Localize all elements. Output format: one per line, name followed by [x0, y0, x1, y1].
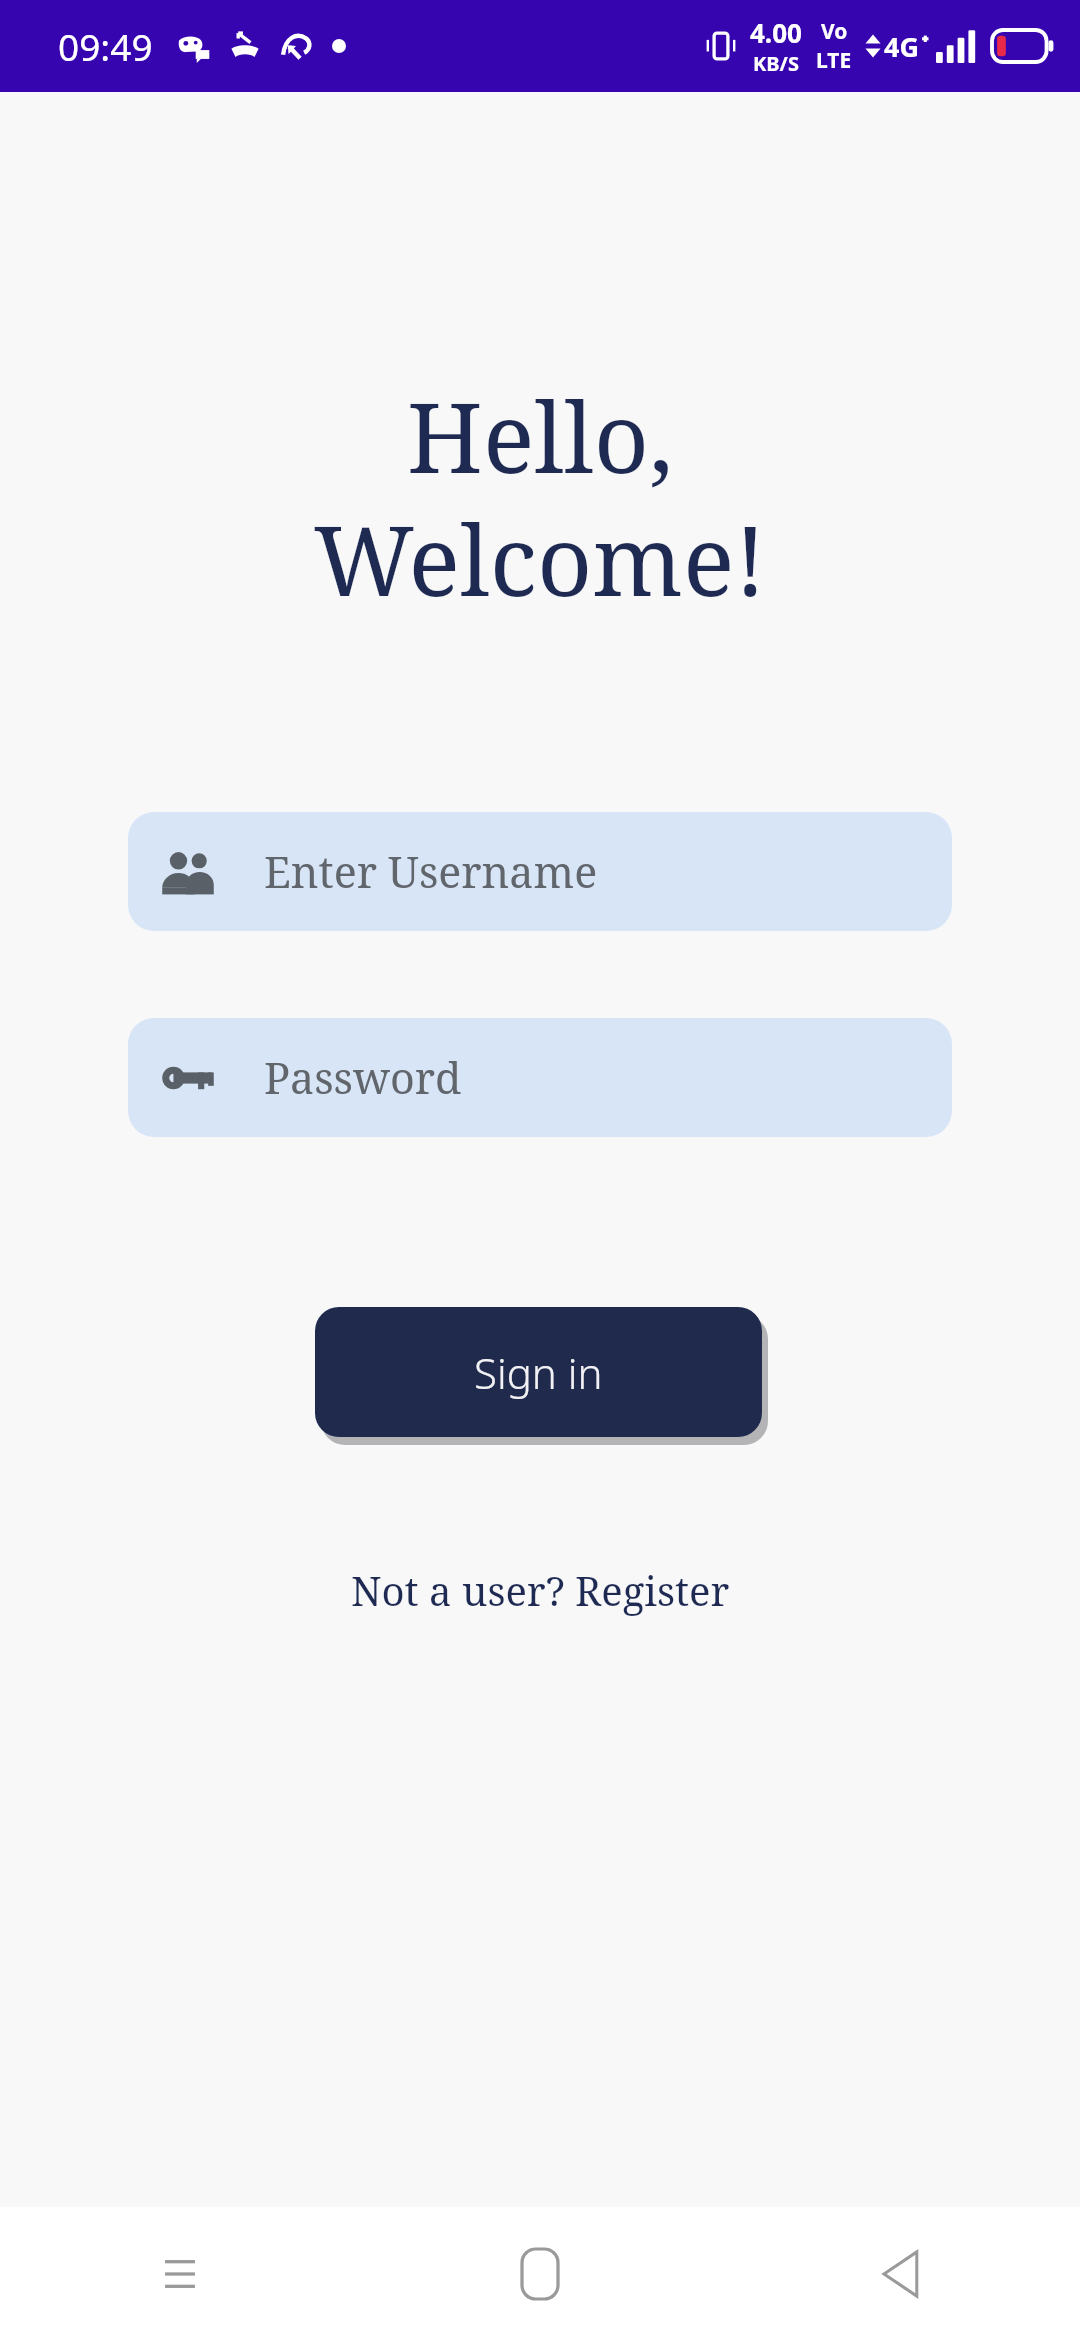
staticText: 4.00 [750, 15, 802, 50]
staticText: Password [264, 1048, 462, 1107]
staticText: Hello, Welcome! [0, 370, 1080, 624]
staticText: 09:49 [58, 21, 153, 71]
other: Password [160, 1050, 216, 1106]
staticText: KB/S [753, 50, 799, 77]
staticText: Vo [821, 17, 848, 46]
staticText: Enter Username [264, 842, 598, 901]
button[interactable]: Password [128, 1018, 952, 1137]
button[interactable]: Sign in [315, 1307, 762, 1437]
staticText: Not a user? Register [351, 1563, 730, 1617]
button[interactable]: Back [720, 2207, 1080, 2340]
staticText: 4G [884, 28, 919, 65]
button[interactable]: Username [128, 812, 952, 931]
button[interactable]: Recent apps [0, 2207, 360, 2340]
staticText: Sign in [474, 1344, 603, 1401]
button[interactable]: Not a user? Register [341, 1557, 740, 1623]
button[interactable]: Home [360, 2207, 720, 2340]
other: Username [160, 844, 216, 900]
staticText: LTE [816, 46, 852, 75]
